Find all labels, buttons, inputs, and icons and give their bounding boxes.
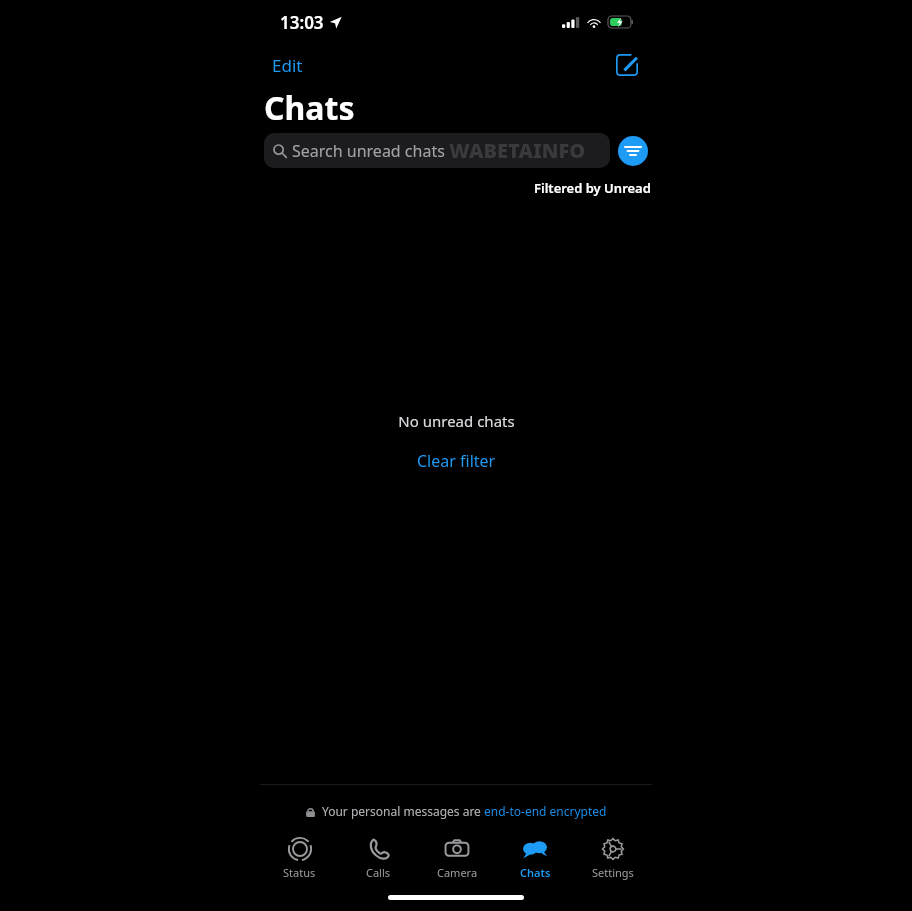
button[interactable]: Clear filter	[409, 447, 504, 475]
staticText: Edit	[272, 54, 303, 77]
button[interactable]: end-to-end encrypted	[484, 803, 607, 819]
staticText: end-to-end encrypted	[484, 803, 607, 819]
staticText: No unread chats	[398, 411, 515, 431]
staticText: Chats	[520, 865, 551, 880]
staticText: WABETAINFO	[449, 137, 586, 164]
button[interactable]: Status	[260, 832, 339, 884]
staticText: Clear filter	[417, 450, 496, 472]
button[interactable]: New chat	[610, 48, 644, 82]
button[interactable]: Chats	[496, 832, 574, 884]
button[interactable]: Settings	[574, 832, 652, 884]
button[interactable]: Calls	[339, 832, 418, 884]
staticText: Search unread chats	[292, 140, 445, 162]
button[interactable]: Camera	[418, 832, 496, 884]
staticText: 13:03	[280, 11, 324, 34]
button[interactable]: Edit	[264, 48, 311, 83]
staticText: Calls	[366, 865, 391, 880]
staticText: Settings	[592, 865, 634, 880]
staticText: Camera	[437, 865, 478, 880]
staticText: Your personal messages are	[322, 803, 484, 819]
staticText: Chats	[264, 86, 355, 124]
button[interactable]: Search unread chats	[264, 133, 610, 168]
staticText: Status	[283, 865, 316, 880]
staticText: Filtered by Unread	[534, 179, 651, 197]
button[interactable]: Filter chats	[618, 136, 648, 166]
